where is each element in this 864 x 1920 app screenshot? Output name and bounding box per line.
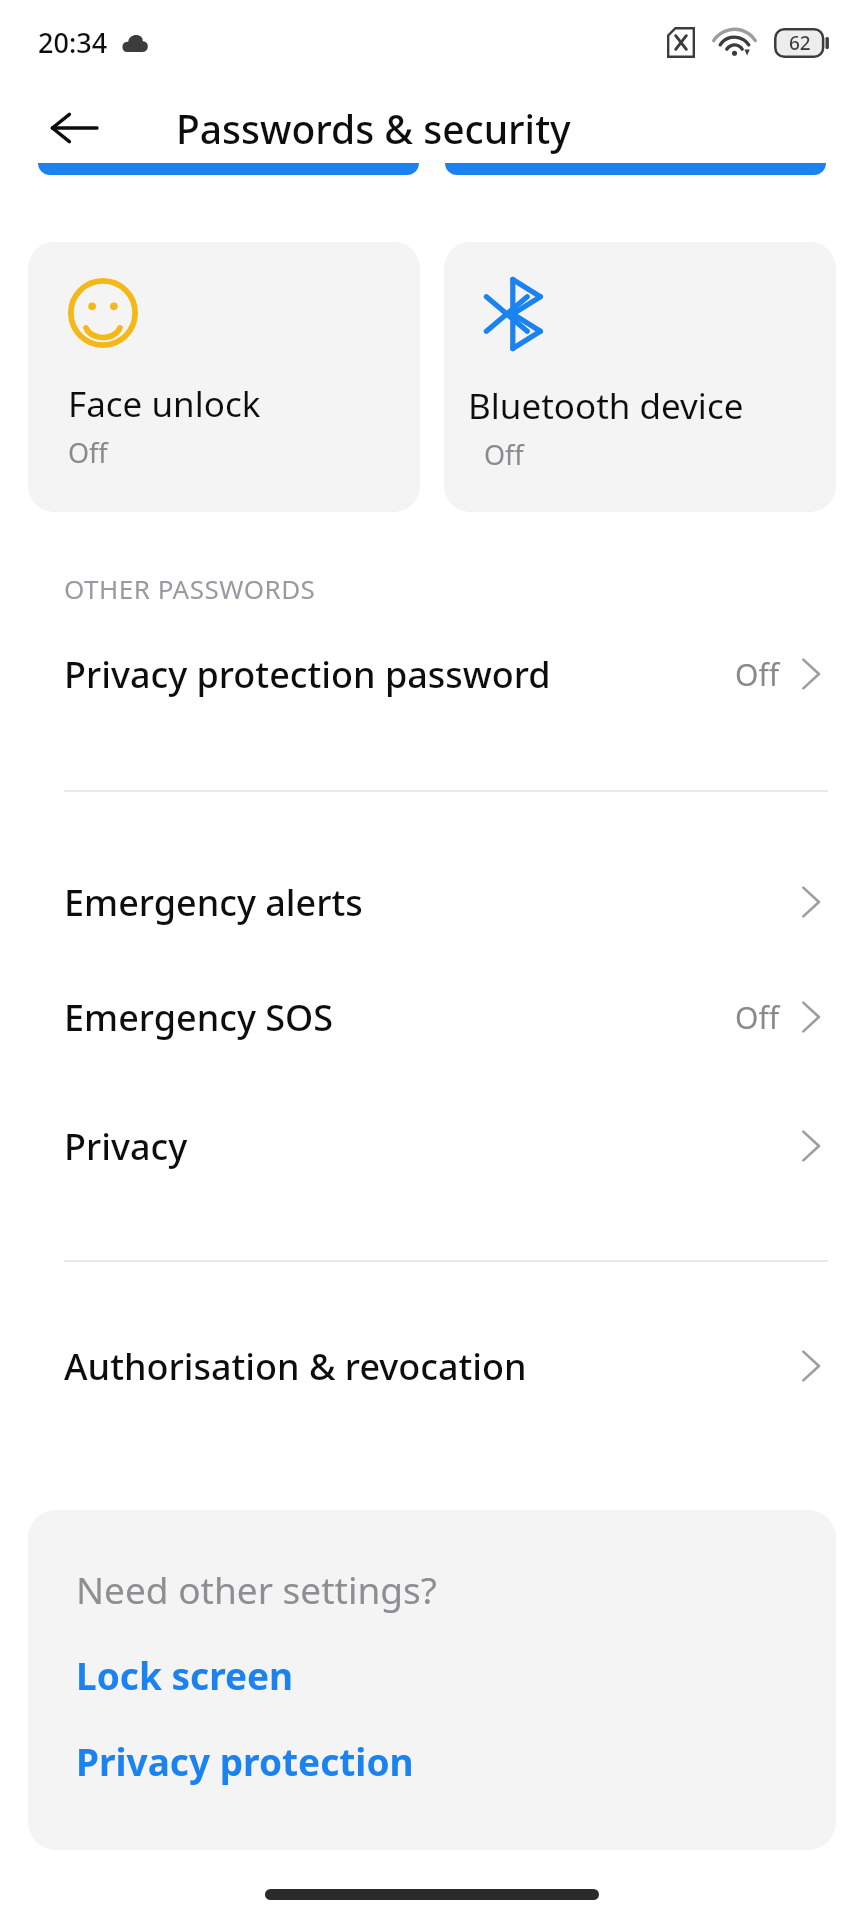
staticText: Need other settings?	[76, 1564, 437, 1614]
staticText: Face unlock	[68, 380, 261, 428]
button[interactable]: Lock screen	[76, 1650, 294, 1700]
button[interactable]: Emergency SOS	[0, 952, 864, 1082]
button[interactable]: Privacy protection	[76, 1736, 414, 1786]
staticText: Bluetooth device	[468, 382, 744, 430]
button[interactable]: Face unlock	[28, 242, 420, 512]
staticText: Emergency SOS	[64, 993, 735, 1042]
button[interactable]: Emergency alerts	[0, 852, 864, 952]
staticText: Passwords & security	[176, 102, 571, 155]
staticText: Privacy protection password	[64, 650, 735, 699]
staticText: Off	[68, 434, 108, 471]
button[interactable]: Privacy protection password	[0, 616, 864, 732]
button[interactable]: Bluetooth device	[444, 242, 836, 512]
staticText: Off	[735, 997, 780, 1038]
staticText: Lock screen	[76, 1650, 294, 1700]
staticText: Off	[735, 654, 780, 695]
staticText: Privacy protection	[76, 1736, 414, 1786]
button[interactable]: Back	[34, 88, 114, 168]
staticText: OTHER PASSWORDS	[64, 571, 316, 606]
button[interactable]: Privacy	[0, 1082, 864, 1210]
staticText: Emergency alerts	[64, 878, 800, 927]
staticText: Privacy	[64, 1122, 800, 1171]
staticText: 62	[789, 30, 811, 56]
staticText: 20:34	[38, 24, 108, 61]
button[interactable]: Authorisation & revocation	[0, 1316, 864, 1416]
staticText: Off	[484, 436, 524, 473]
staticText: Authorisation & revocation	[64, 1342, 800, 1391]
